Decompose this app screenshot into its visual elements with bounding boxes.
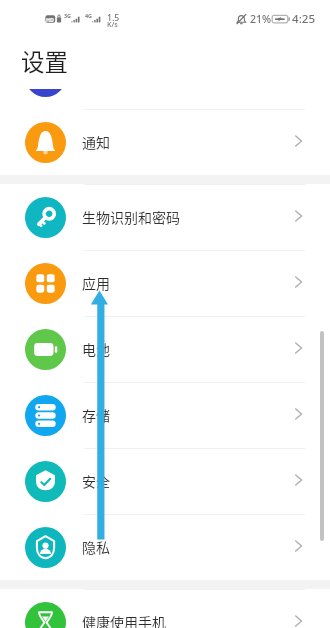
button[interactable]: 电池 <box>0 316 330 382</box>
staticText: 3G <box>64 12 71 19</box>
staticText: 存储 <box>82 405 110 425</box>
button[interactable]: 通知 <box>0 109 330 175</box>
button[interactable]: 健康使用手机 <box>0 589 330 628</box>
staticText: 隐私 <box>82 537 110 557</box>
staticText: 安全 <box>82 471 110 491</box>
staticText: 4G <box>85 12 92 19</box>
staticText: 通知 <box>82 132 110 152</box>
staticText: 1.5 <box>107 12 120 24</box>
button[interactable]: 安全 <box>0 448 330 514</box>
staticText: 设置 <box>21 44 68 78</box>
staticText: 健康使用手机 <box>82 612 166 628</box>
button[interactable]: 存储 <box>0 382 330 448</box>
button[interactable]: 应用 <box>0 250 330 316</box>
staticText: 4:25 <box>292 11 316 27</box>
staticText: K/s <box>107 19 118 29</box>
staticText: HD <box>46 16 54 23</box>
staticText: 21% <box>250 12 272 26</box>
button[interactable]: 显示和亮度 <box>0 89 330 109</box>
staticText: 应用 <box>82 273 110 293</box>
button[interactable]: 生物识别和密码 <box>0 184 330 250</box>
button[interactable]: 隐私 <box>0 514 330 580</box>
staticText: 电池 <box>82 339 110 359</box>
staticText: 生物识别和密码 <box>82 207 180 227</box>
